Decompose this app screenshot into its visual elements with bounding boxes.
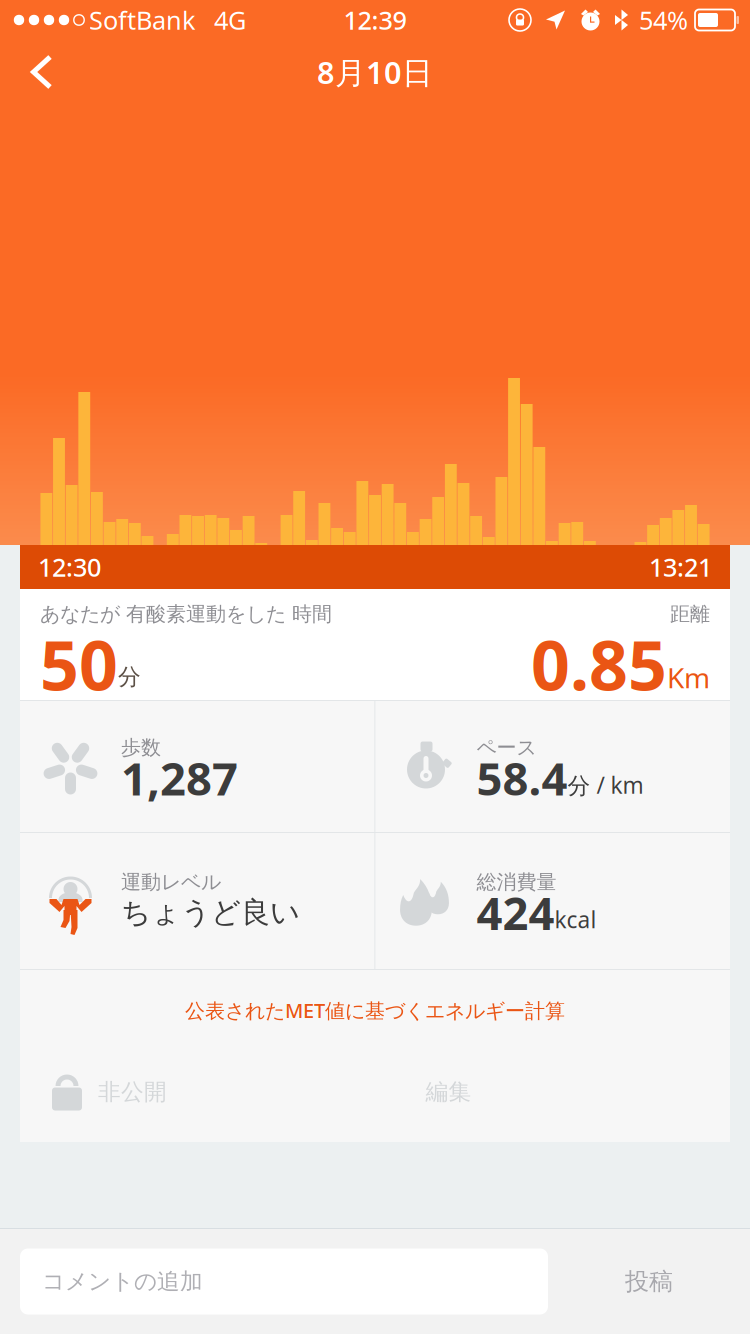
staticText: 12:30 bbox=[38, 550, 101, 584]
staticText: 12:39 bbox=[343, 3, 406, 37]
staticText: Km bbox=[667, 659, 710, 696]
staticText: 分 bbox=[118, 663, 141, 691]
staticText: ちょうど良い bbox=[121, 894, 300, 930]
button[interactable]: 投稿 bbox=[607, 1255, 691, 1308]
staticText: 1,287 bbox=[121, 748, 238, 808]
staticText: 424 bbox=[476, 882, 554, 943]
staticText: 距離 bbox=[670, 602, 710, 626]
staticText: 8月10日 bbox=[317, 52, 433, 92]
staticText: 編集 bbox=[425, 1078, 471, 1106]
staticText: 50 bbox=[40, 619, 118, 709]
staticText: kcal bbox=[554, 904, 596, 934]
staticText: 4G bbox=[214, 3, 246, 37]
staticText: 分 / km bbox=[567, 770, 643, 800]
button[interactable]: 編集 bbox=[405, 1070, 491, 1114]
staticText: コメントの追加 bbox=[42, 1268, 203, 1295]
staticText: SoftBank bbox=[89, 3, 196, 37]
staticText: 投稿 bbox=[625, 1267, 673, 1296]
button[interactable]: 非公開 bbox=[20, 1064, 167, 1120]
button[interactable]: コメントの追加 bbox=[20, 1248, 548, 1314]
staticText: 13:21 bbox=[649, 550, 712, 584]
staticText: ペース bbox=[476, 735, 536, 760]
staticText: 54% bbox=[639, 3, 688, 37]
staticText: 58.4 bbox=[476, 748, 567, 808]
staticText: 運動レベル bbox=[121, 870, 221, 894]
staticText: あなたが 有酸素運動をした 時間 bbox=[40, 602, 332, 626]
staticText: 総消費量 bbox=[476, 870, 556, 894]
staticText: 非公開 bbox=[98, 1078, 167, 1106]
staticText: 0.85 bbox=[531, 619, 667, 709]
staticText: 公表されたMET値に基づくエネルギー計算 bbox=[185, 997, 565, 1024]
staticText: 歩数 bbox=[121, 735, 161, 760]
button[interactable]: Back bbox=[0, 41, 76, 103]
